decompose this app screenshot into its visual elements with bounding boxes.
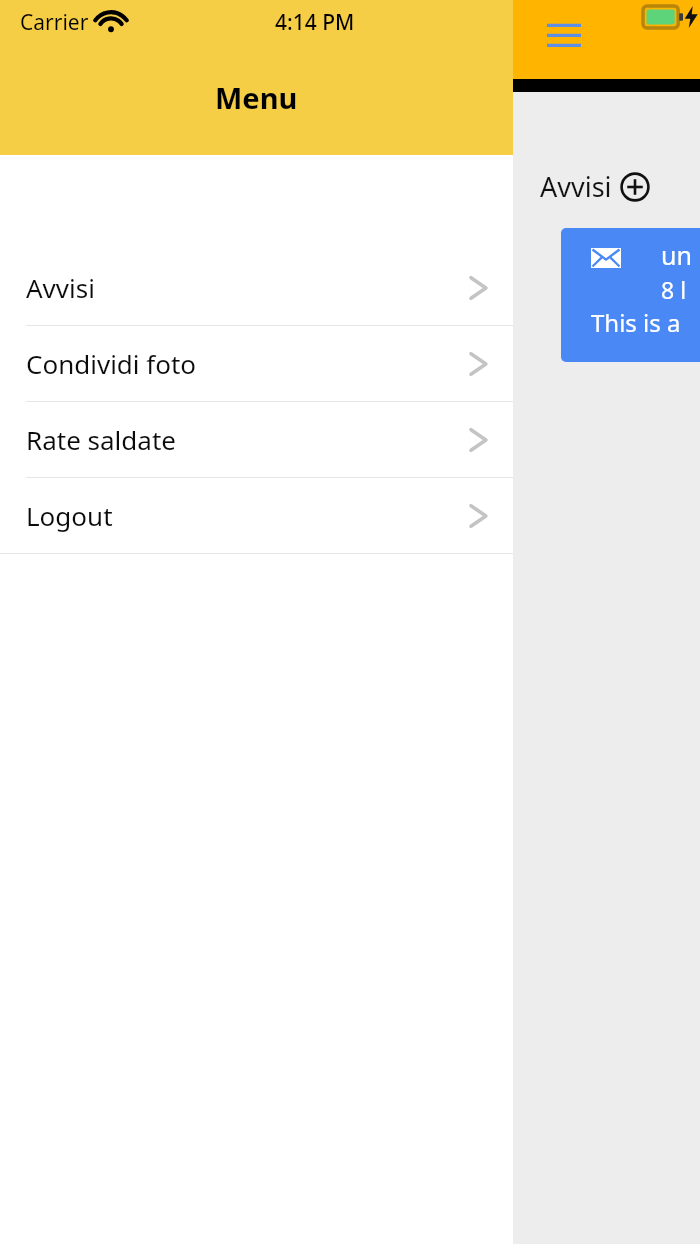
staticText: 4:14 PM [275, 8, 355, 37]
button[interactable]: Open menu [536, 14, 592, 54]
staticText: Condividi foto [26, 346, 467, 381]
staticText: Avvisi [540, 168, 612, 205]
button[interactable]: Add notice [618, 170, 652, 204]
button[interactable]: Condividi foto [0, 326, 513, 401]
staticText: Carrier [20, 8, 89, 37]
staticText: 8 l [661, 274, 687, 305]
staticText: Rate saldate [26, 422, 467, 457]
button[interactable]: Logout [0, 478, 513, 553]
staticText: un [661, 238, 692, 272]
staticText: This is a de [591, 306, 700, 339]
button[interactable]: Avvisi [0, 250, 513, 325]
staticText: Avvisi [26, 270, 467, 305]
staticText: Logout [26, 498, 467, 533]
button[interactable]: un [561, 228, 700, 362]
button[interactable]: Rate saldate [0, 402, 513, 477]
staticText: Menu [215, 78, 298, 117]
